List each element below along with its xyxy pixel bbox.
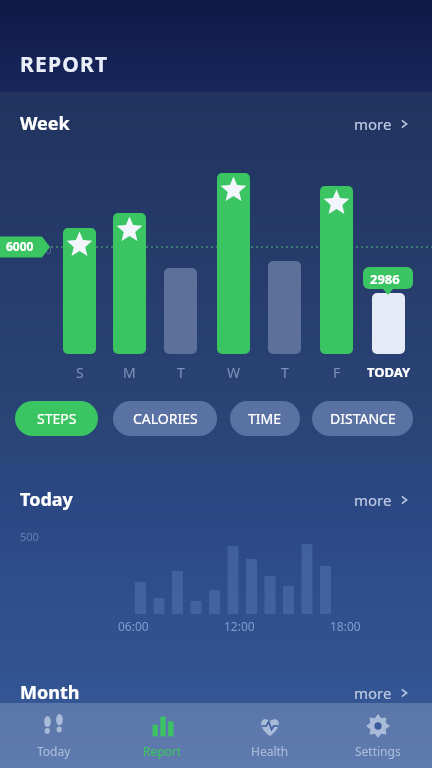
staticText: Settings [355, 743, 401, 759]
button[interactable]: more [352, 112, 412, 136]
staticText: Today [37, 743, 71, 759]
staticText: more [354, 114, 392, 134]
staticText: 12:00 [224, 618, 255, 634]
staticText: Today [20, 487, 73, 512]
button[interactable]: Report [108, 703, 216, 768]
staticText: 18:00 [330, 618, 361, 634]
button[interactable]: DISTANCE [312, 401, 413, 436]
staticText: S [76, 363, 84, 382]
button[interactable]: Today [0, 703, 108, 768]
button[interactable]: Settings [324, 703, 432, 768]
button[interactable]: CALORIES [113, 401, 217, 436]
staticText: DISTANCE [330, 409, 396, 428]
staticText: 500 [20, 529, 39, 544]
staticText: STEPS [37, 409, 77, 428]
staticText: T [281, 363, 289, 382]
staticText: TODAY [367, 363, 411, 381]
staticText: TIME [248, 409, 282, 428]
staticText: more [354, 490, 392, 510]
staticText: Week [20, 111, 70, 136]
staticText: Health [251, 743, 289, 759]
button[interactable]: STEPS [15, 401, 98, 436]
staticText: 12000 [20, 242, 52, 257]
staticText: 6000 [6, 238, 34, 254]
staticText: T [177, 363, 185, 382]
staticText: F [333, 363, 341, 382]
staticText: CALORIES [133, 409, 198, 428]
staticText: more [354, 683, 392, 703]
staticText: REPORT [20, 50, 109, 79]
staticText: W [227, 363, 241, 382]
button[interactable]: more [352, 681, 412, 705]
button[interactable]: more [352, 488, 412, 512]
button[interactable]: TIME [230, 401, 300, 436]
button[interactable]: Health [216, 703, 324, 768]
staticText: Report [143, 743, 182, 759]
staticText: Month [20, 680, 80, 705]
staticText: M [123, 363, 136, 382]
staticText: 2986 [370, 270, 400, 288]
staticText: 06:00 [118, 618, 149, 634]
